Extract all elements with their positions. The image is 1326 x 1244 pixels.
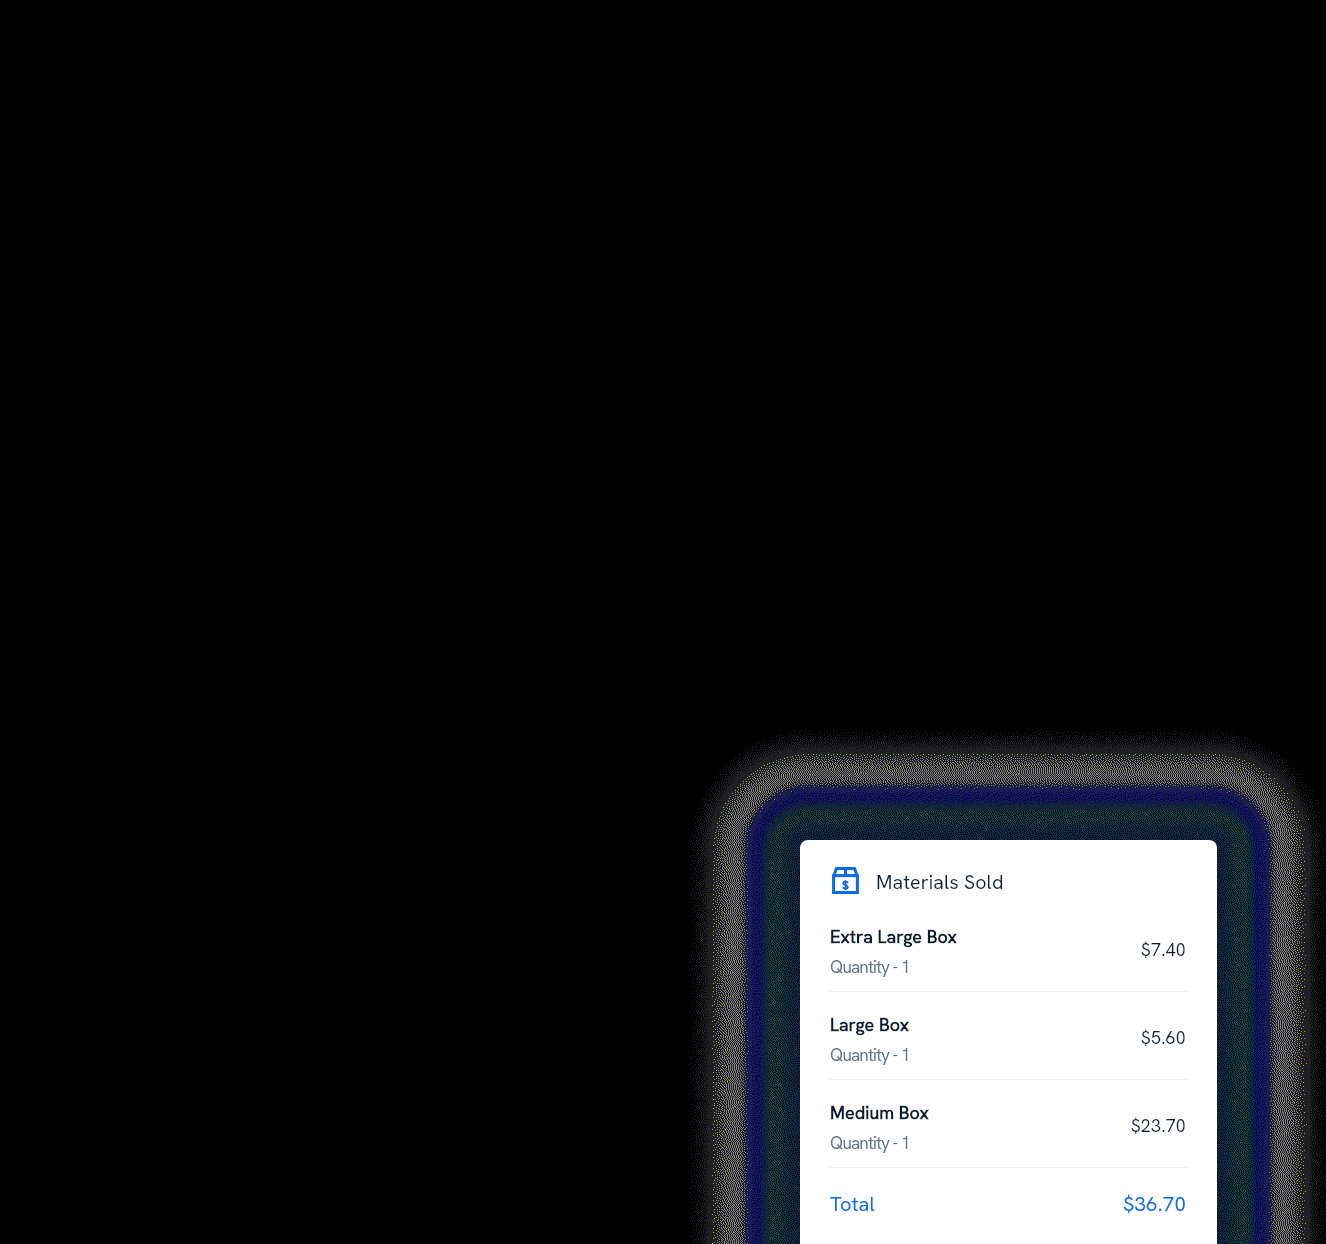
button[interactable]: Materials sold: [818, 858, 1018, 898]
staticText: Quantity - 1: [830, 1132, 910, 1155]
staticText: $23.70: [800, 1114, 1186, 1137]
button[interactable]: Total: [800, 1183, 1217, 1244]
staticText: Quantity - 1: [830, 956, 910, 979]
button[interactable]: Extra Large Box: [800, 919, 1217, 991]
button[interactable]: Large Box: [800, 1007, 1217, 1079]
staticText: $7.40: [800, 938, 1186, 961]
staticText: Quantity - 1: [830, 1044, 910, 1067]
staticText: $5.60: [800, 1026, 1186, 1049]
staticText: $36.70: [800, 1191, 1186, 1217]
staticText: Medium Box: [830, 1101, 929, 1124]
other: Materials sold: [832, 867, 859, 894]
staticText: Materials Sold: [876, 869, 1004, 895]
staticText: Extra Large Box: [830, 925, 957, 948]
button[interactable]: Medium Box: [800, 1095, 1217, 1167]
staticText: Large Box: [830, 1013, 910, 1036]
staticText: Total: [830, 1191, 875, 1217]
